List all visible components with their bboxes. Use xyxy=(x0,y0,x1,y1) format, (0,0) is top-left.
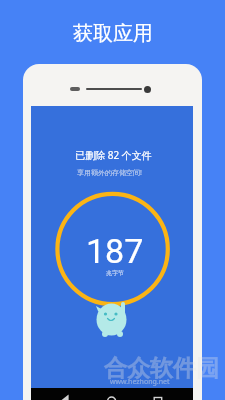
staticText: 已删除 82 个文件 xyxy=(75,148,152,162)
staticText: 兆字节 xyxy=(106,269,124,277)
staticText: www.hezhong.net xyxy=(110,377,170,387)
staticText: 获取应用 xyxy=(73,21,153,46)
staticText: 合众软件园 xyxy=(104,354,219,383)
button[interactable]: Home xyxy=(105,393,119,400)
button[interactable]: Back xyxy=(59,393,73,400)
button[interactable]: 获取应用 xyxy=(60,20,165,46)
staticText: 187 xyxy=(86,231,144,267)
staticText: 享用额外的存储空间! xyxy=(77,168,142,178)
button[interactable]: Recents xyxy=(152,393,166,400)
